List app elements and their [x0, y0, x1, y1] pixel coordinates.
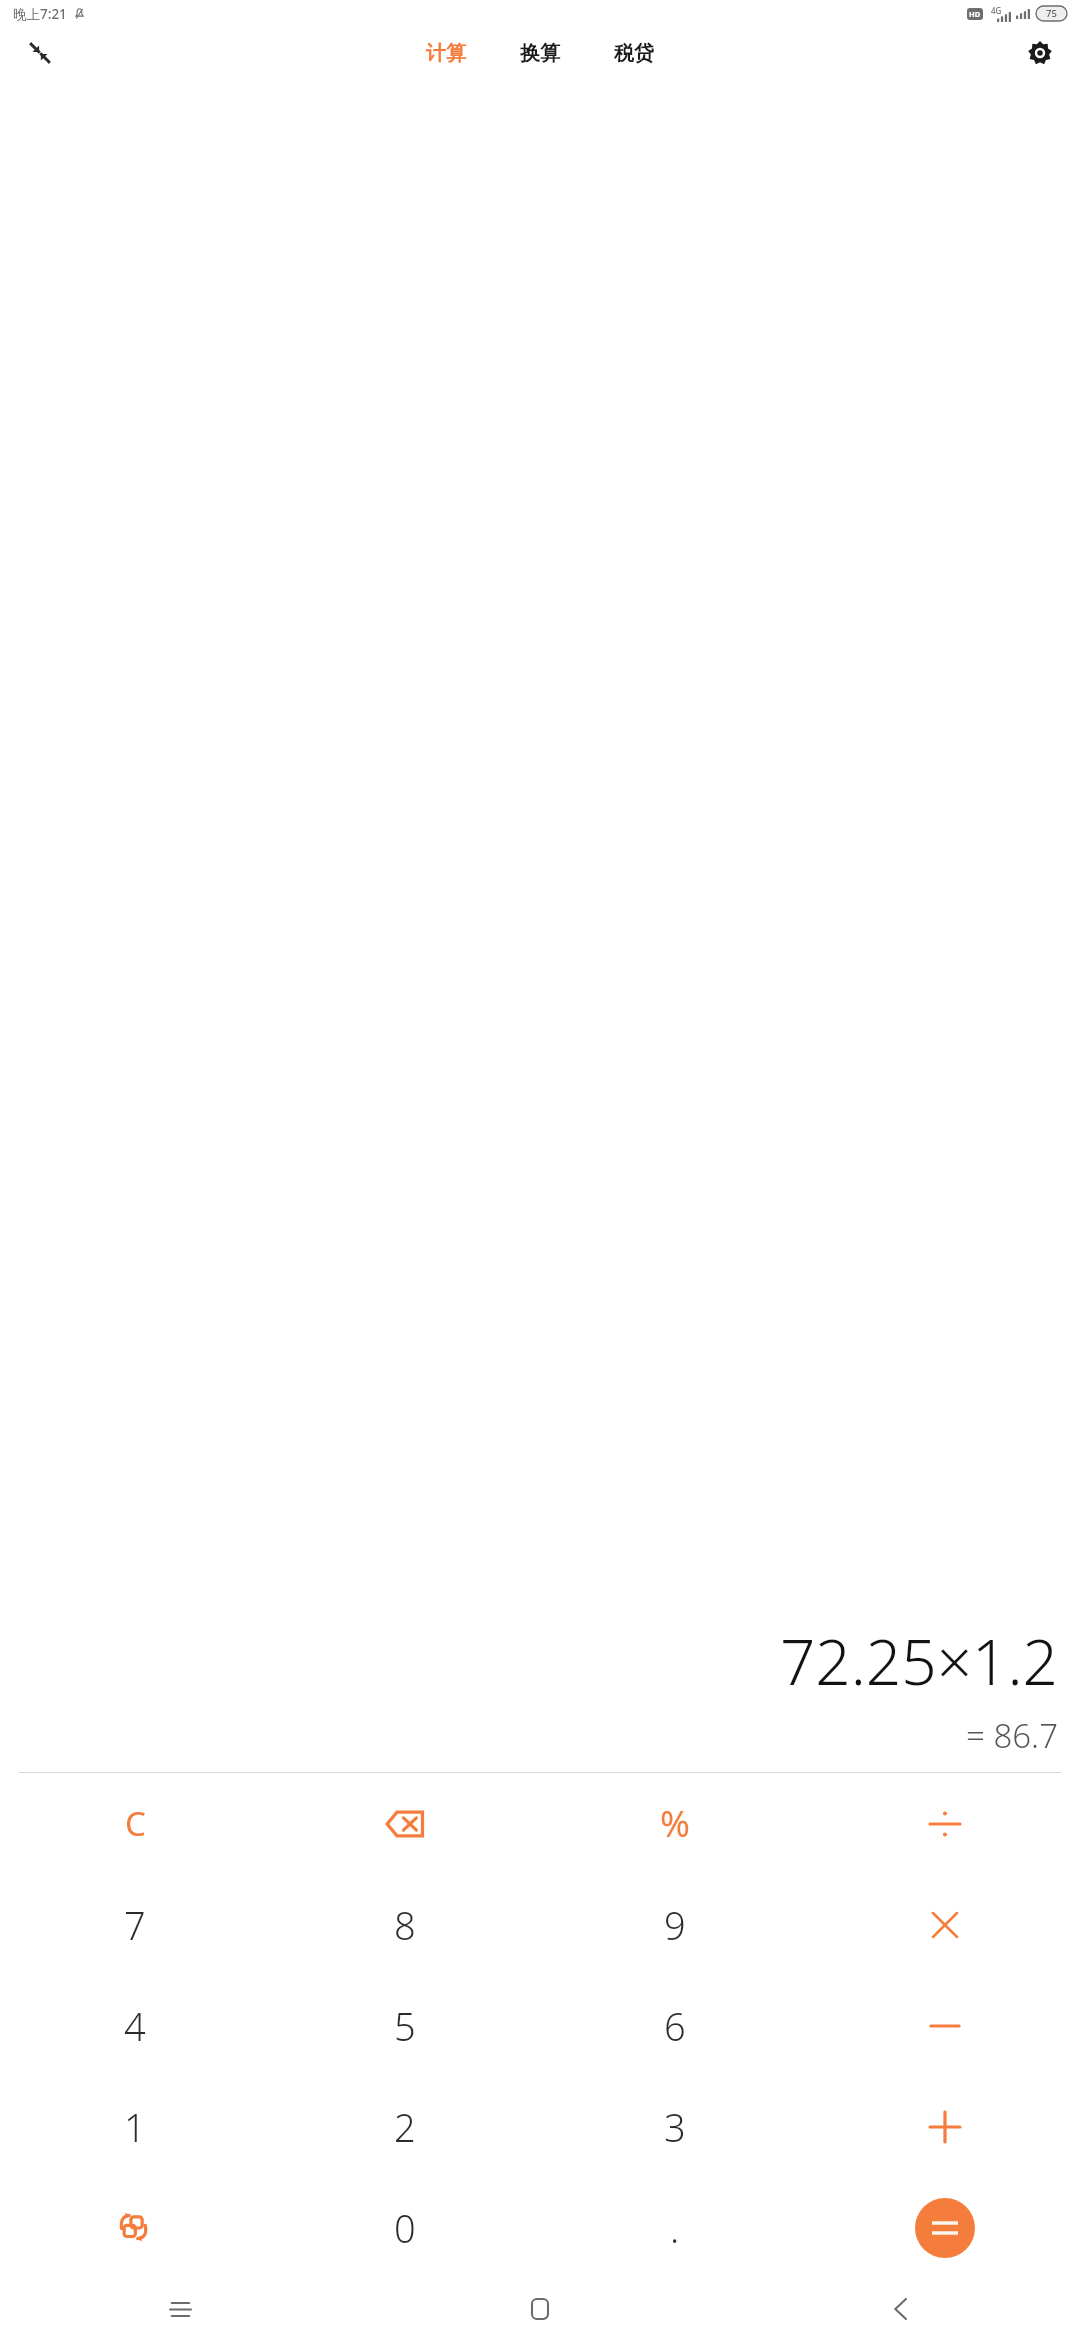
staticText: 1	[124, 2101, 146, 2153]
button[interactable]: 0	[270, 2177, 540, 2278]
staticText: 税贷	[614, 41, 654, 66]
staticText: 8	[394, 1899, 416, 1951]
button[interactable]: 换算	[516, 35, 564, 72]
button[interactable]: Equals	[915, 2198, 975, 2258]
staticText: 换算	[520, 41, 560, 66]
button[interactable]: Home	[360, 2278, 720, 2340]
button[interactable]: Recents	[0, 2278, 360, 2340]
staticText: 晚上7:21	[13, 5, 67, 23]
staticText: 0	[394, 2202, 416, 2254]
staticText: 6	[664, 2000, 686, 2052]
button[interactable]: C	[0, 1773, 270, 1874]
staticText: 4G	[991, 5, 1002, 16]
staticText: HD	[969, 9, 981, 19]
button[interactable]: 1	[0, 2076, 270, 2177]
other: Minus	[929, 2010, 961, 2042]
staticText: .	[670, 2202, 680, 2254]
button[interactable]: 税贷	[610, 35, 658, 72]
button[interactable]: 计算	[422, 35, 470, 72]
button[interactable]: Plus	[810, 2076, 1080, 2177]
staticText: 计算	[426, 41, 466, 66]
button[interactable]: 2	[270, 2076, 540, 2177]
button[interactable]: Back	[720, 2278, 1080, 2340]
staticText: C	[125, 1801, 146, 1846]
staticText: 3	[664, 2101, 686, 2153]
other: Divide	[928, 1807, 962, 1841]
other: Multiply	[930, 1910, 960, 1940]
button[interactable]: .	[540, 2177, 810, 2278]
staticText: = 86.7	[965, 1713, 1058, 1758]
staticText: 2	[394, 2101, 416, 2153]
button[interactable]: Multiply	[810, 1874, 1080, 1975]
button[interactable]: 5	[270, 1975, 540, 2076]
staticText: 7	[124, 1899, 146, 1951]
staticText: 4	[124, 2000, 146, 2052]
button[interactable]: Minus	[810, 1975, 1080, 2076]
button[interactable]: 3	[540, 2076, 810, 2177]
button[interactable]: 8	[270, 1874, 540, 1975]
button[interactable]: Settings	[1016, 29, 1064, 77]
other: Backspace	[386, 1810, 424, 1838]
staticText: 9	[664, 1899, 686, 1951]
button[interactable]: 7	[0, 1874, 270, 1975]
staticText: 75	[1046, 7, 1057, 20]
staticText: 5	[394, 2000, 416, 2052]
button[interactable]: 4	[0, 1975, 270, 2076]
other: Unit convert	[118, 2211, 152, 2245]
button[interactable]: 9	[540, 1874, 810, 1975]
button[interactable]: 6	[540, 1975, 810, 2076]
button[interactable]: Backspace	[270, 1773, 540, 1874]
button[interactable]: Divide	[810, 1773, 1080, 1874]
button[interactable]: Collapse	[16, 29, 64, 77]
staticText: 72.25×1.2	[779, 1619, 1058, 1703]
button[interactable]: Unit convert	[0, 2177, 270, 2278]
button[interactable]: %	[540, 1773, 810, 1874]
other: Plus	[928, 2110, 962, 2144]
staticText: %	[660, 1799, 690, 1848]
